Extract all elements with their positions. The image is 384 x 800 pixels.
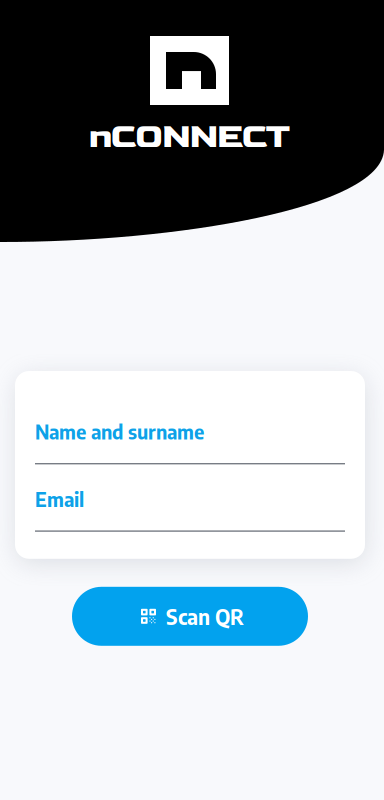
staticText: nCONNECT — [88, 116, 291, 158]
staticText: Scan QR — [166, 603, 244, 630]
button[interactable]: Scan QR — [72, 587, 308, 646]
staticText: Email — [35, 486, 84, 511]
staticText: Name and surname — [35, 419, 204, 444]
